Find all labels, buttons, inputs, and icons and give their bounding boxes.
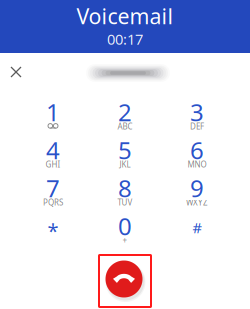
staticText: GHI <box>45 159 60 170</box>
staticText: # <box>192 218 201 237</box>
staticText: * <box>47 217 58 244</box>
button[interactable]: 5 <box>89 136 161 174</box>
staticText: 00:17 <box>107 29 143 49</box>
button[interactable]: 3 <box>161 98 233 136</box>
button[interactable]: 9 <box>161 174 233 212</box>
button[interactable]: # <box>161 212 233 250</box>
staticText: WXYZ <box>186 197 208 208</box>
staticText: PQRS <box>43 197 63 208</box>
staticText: 9 <box>190 172 204 204</box>
staticText: 0 <box>118 210 132 242</box>
button[interactable]: 2 <box>89 98 161 136</box>
staticText: 1 <box>46 96 60 128</box>
staticText: 8 <box>118 172 132 204</box>
staticText: 2 <box>118 96 132 128</box>
button[interactable]: Close <box>0 56 32 88</box>
staticText: 6 <box>190 134 204 166</box>
button[interactable]: 1 <box>17 98 89 136</box>
button[interactable]: * <box>17 212 89 250</box>
button[interactable]: 6 <box>161 136 233 174</box>
staticText: DEF <box>190 121 204 132</box>
staticText: TUV <box>117 197 132 208</box>
staticText: 4 <box>46 134 60 166</box>
staticText: MNO <box>187 159 206 170</box>
button[interactable]: 0 <box>89 212 161 250</box>
button[interactable]: 7 <box>17 174 89 212</box>
staticText: ABC <box>117 121 132 132</box>
staticText: 7 <box>46 172 60 204</box>
staticText: + <box>122 235 127 246</box>
staticText: Voicemail <box>76 2 173 30</box>
staticText: 3 <box>190 96 204 128</box>
staticText: JKL <box>119 159 130 170</box>
staticText: 5 <box>118 134 132 166</box>
button[interactable]: 4 <box>17 136 89 174</box>
button[interactable]: End call <box>105 260 142 297</box>
button[interactable]: 8 <box>89 174 161 212</box>
